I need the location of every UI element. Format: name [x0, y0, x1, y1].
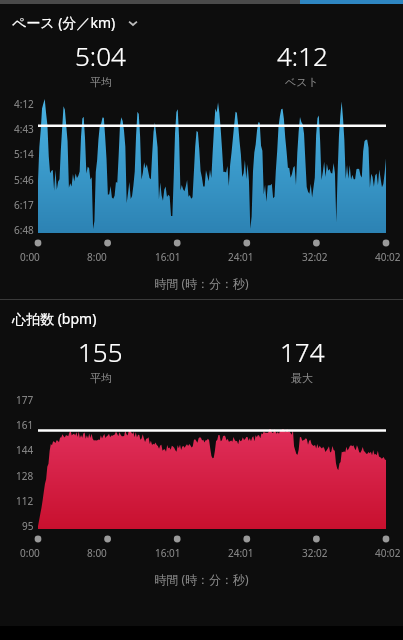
staticText: ペース (分／km) [12, 13, 116, 32]
staticText: 心拍数 (bpm) [12, 309, 97, 328]
staticText: 174 [280, 334, 325, 369]
staticText: 161 [16, 418, 34, 432]
staticText: 0:00 [20, 546, 40, 560]
staticText: 0:00 [20, 250, 40, 264]
staticText: 時間 (時：分：秒) [154, 275, 249, 291]
staticText: 最大 [291, 371, 313, 385]
staticText: 24:01 [228, 546, 254, 560]
staticText: 40:02 [375, 546, 401, 560]
staticText: 平均 [90, 371, 112, 385]
staticText: 155 [78, 334, 123, 369]
staticText: 4:12 [277, 38, 328, 73]
staticText: 144 [16, 443, 34, 457]
staticText: 時間 (時：分：秒) [154, 571, 249, 587]
staticText: 24:01 [228, 250, 254, 264]
staticText: 4:12 [14, 97, 34, 111]
staticText: 112 [16, 494, 34, 508]
staticText: 40:02 [375, 250, 401, 264]
staticText: 128 [16, 469, 34, 483]
button[interactable]: 心拍数 (bpm) [0, 300, 403, 330]
staticText: ベスト [285, 75, 319, 89]
staticText: 5:46 [14, 173, 34, 187]
other: Change metric [126, 16, 140, 30]
staticText: 5:04 [75, 38, 126, 73]
button[interactable]: ペース (分／km) [0, 4, 403, 34]
staticText: 95 [22, 519, 34, 533]
staticText: 4:43 [14, 122, 34, 136]
staticText: 6:48 [14, 223, 34, 237]
staticText: 32:02 [302, 250, 328, 264]
staticText: 5:14 [14, 147, 34, 161]
staticText: 8:00 [87, 250, 107, 264]
staticText: 16:01 [155, 250, 181, 264]
staticText: 8:00 [87, 546, 107, 560]
staticText: 16:01 [155, 546, 181, 560]
staticText: 平均 [90, 75, 112, 89]
staticText: 177 [16, 393, 34, 407]
staticText: 6:17 [14, 198, 34, 212]
staticText: 32:02 [302, 546, 328, 560]
